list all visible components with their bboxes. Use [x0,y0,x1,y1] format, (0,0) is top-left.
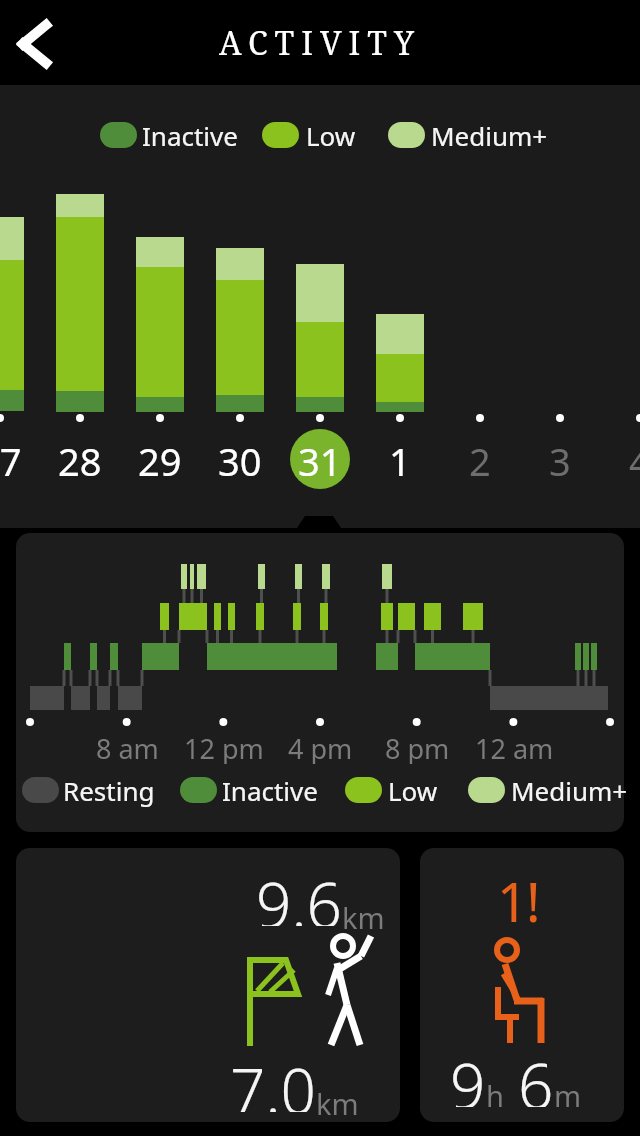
staticText: Inactive [222,773,318,808]
staticText: 6 [518,1043,554,1107]
button[interactable]: 1 [360,435,440,483]
button[interactable]: 29 [120,435,200,483]
staticText: Medium+ [431,118,548,153]
button[interactable]: 3 [520,435,600,483]
button[interactable] [0,0,85,85]
staticText: 8 pm [385,730,450,764]
staticText: 2 [469,435,491,483]
staticText: 4 pm [288,730,353,764]
staticText: 29 [138,435,182,483]
staticText: Low [388,773,438,808]
staticText: km [316,1084,359,1123]
staticText: 30 [218,435,262,483]
button[interactable] [16,848,400,1122]
staticText: 1! [497,864,539,928]
staticText: 9 [450,1043,486,1107]
staticText: 4 [629,435,640,483]
staticText: 3 [549,435,571,483]
staticText: 8 am [96,730,159,764]
staticText: Resting [63,773,155,808]
staticText: 1 [389,435,411,483]
staticText: 12 am [475,730,554,764]
staticText: 7.0 [230,1048,316,1112]
button[interactable]: 30 [200,435,280,483]
staticText: 9.6 [256,862,342,926]
staticText: 28 [58,435,102,483]
staticText: 27 [0,435,22,483]
button[interactable]: 27 [0,435,40,483]
staticText: Low [306,118,356,153]
button[interactable]: 2 [440,435,520,483]
button[interactable] [16,533,624,832]
staticText: Medium+ [511,773,628,808]
staticText: 31 [298,435,342,483]
button[interactable] [420,848,624,1122]
staticText: Inactive [142,118,238,153]
staticText: 12 pm [184,730,264,764]
button[interactable]: 4 [600,435,640,483]
button[interactable]: 28 [40,435,120,483]
staticText: km [342,898,385,937]
staticText: h [486,1076,504,1115]
staticText: m [554,1076,582,1115]
staticText: ACTIVITY [219,21,421,65]
button[interactable]: 31 [280,435,360,483]
